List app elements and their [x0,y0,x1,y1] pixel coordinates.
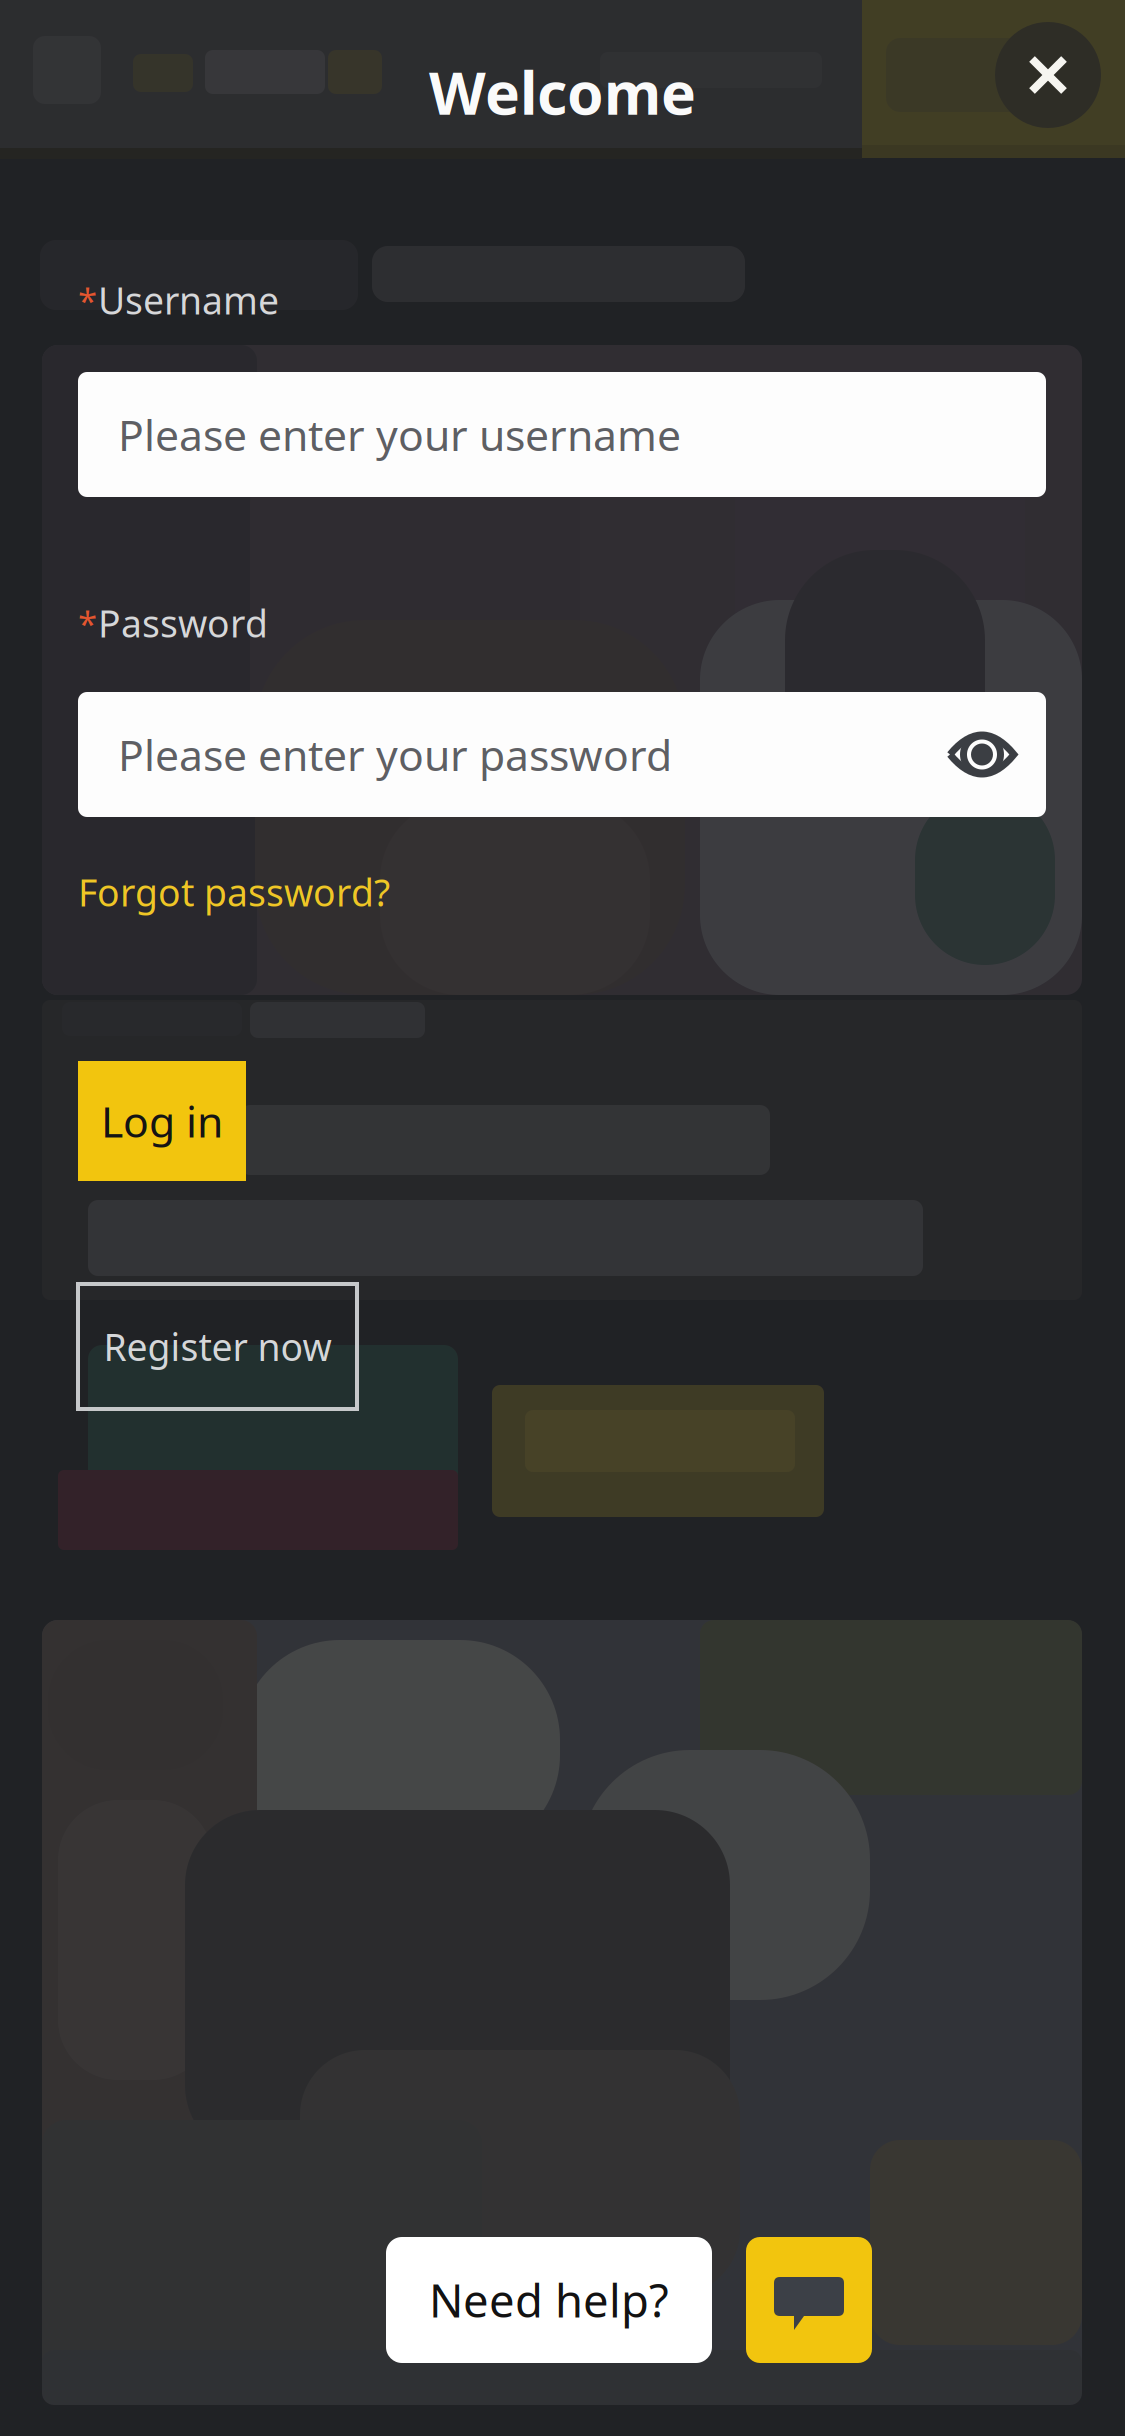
staticText: Register now [103,1322,331,1371]
button[interactable]: Register now [78,1284,357,1409]
staticText: Please enter your password [118,726,672,783]
button[interactable]: Log in [78,1061,246,1181]
button[interactable]: Need help? [386,2237,712,2363]
staticText: Please enter your username [118,406,681,463]
button[interactable]: Forgot password? [78,860,418,924]
button[interactable]: Chat support [746,2237,872,2363]
staticText: * [78,600,97,646]
staticText: Need help? [429,2270,669,2330]
button[interactable]: Show password [937,692,1027,817]
staticText: Username [98,275,279,325]
staticText: Password [98,598,268,648]
staticText: Log in [101,1093,223,1149]
staticText: Forgot password? [78,867,390,917]
staticText: * [78,277,97,323]
button[interactable]: Close [995,22,1101,128]
staticText: Welcome [429,53,696,131]
